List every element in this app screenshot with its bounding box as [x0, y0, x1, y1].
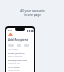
staticText: All your accounts in one page [20, 9, 45, 17]
button[interactable]: Email address [6, 55, 34, 62]
button[interactable]: Account no. [6, 62, 34, 69]
staticText: Bank name [8, 69, 20, 72]
button[interactable]: Filter [17, 44, 21, 47]
button[interactable]: Bank name [6, 69, 34, 72]
staticText: Email address [8, 55, 23, 58]
button[interactable]: Full name [6, 48, 34, 55]
staticText: sarah@mail.com [8, 58, 27, 61]
button[interactable]: Filter [24, 44, 29, 47]
staticText: Add Recipient [8, 38, 28, 42]
staticText: 9:41 [8, 29, 13, 32]
staticText: **** 4829 [8, 65, 20, 68]
staticText: Full name [8, 48, 19, 51]
button[interactable]: Filter [8, 44, 14, 47]
staticText: Sarah Johnson [8, 51, 25, 54]
staticText: Account no. [8, 62, 21, 65]
